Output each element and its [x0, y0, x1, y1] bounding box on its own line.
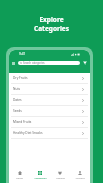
button[interactable]: Menu — [12, 60, 15, 66]
button[interactable]: Search categories — [18, 61, 80, 65]
staticText: Categories — [34, 24, 69, 33]
button[interactable]: Wishlist — [50, 166, 70, 183]
button[interactable]: Filter — [83, 60, 87, 66]
staticText: Explore — [39, 15, 64, 24]
staticText: Mixed Fruits — [13, 120, 32, 124]
button[interactable]: Nuts — [9, 84, 90, 94]
button[interactable]: Seeds — [9, 106, 90, 116]
staticText: Categories — [34, 176, 47, 179]
button[interactable]: Dry Fruits — [9, 73, 90, 83]
button[interactable]: Home — [9, 166, 30, 183]
button[interactable]: Healthy Diet Snacks — [9, 128, 90, 138]
staticText: Dates — [13, 98, 22, 102]
button[interactable]: Dates — [9, 95, 90, 105]
staticText: 9:41 — [19, 52, 26, 56]
staticText: Home — [16, 176, 23, 179]
staticText: Seeds — [13, 109, 22, 113]
staticText: Account — [75, 176, 85, 179]
button[interactable]: Mixed Fruits — [9, 117, 90, 127]
staticText: Wishlist — [56, 176, 65, 179]
staticText: Dry Fruits — [13, 76, 28, 80]
staticText: Search categories — [23, 61, 45, 65]
button[interactable]: Categories — [30, 166, 50, 183]
button[interactable]: Account — [70, 166, 90, 183]
staticText: Nuts — [13, 87, 21, 91]
staticText: Healthy Diet Snacks — [13, 131, 43, 135]
